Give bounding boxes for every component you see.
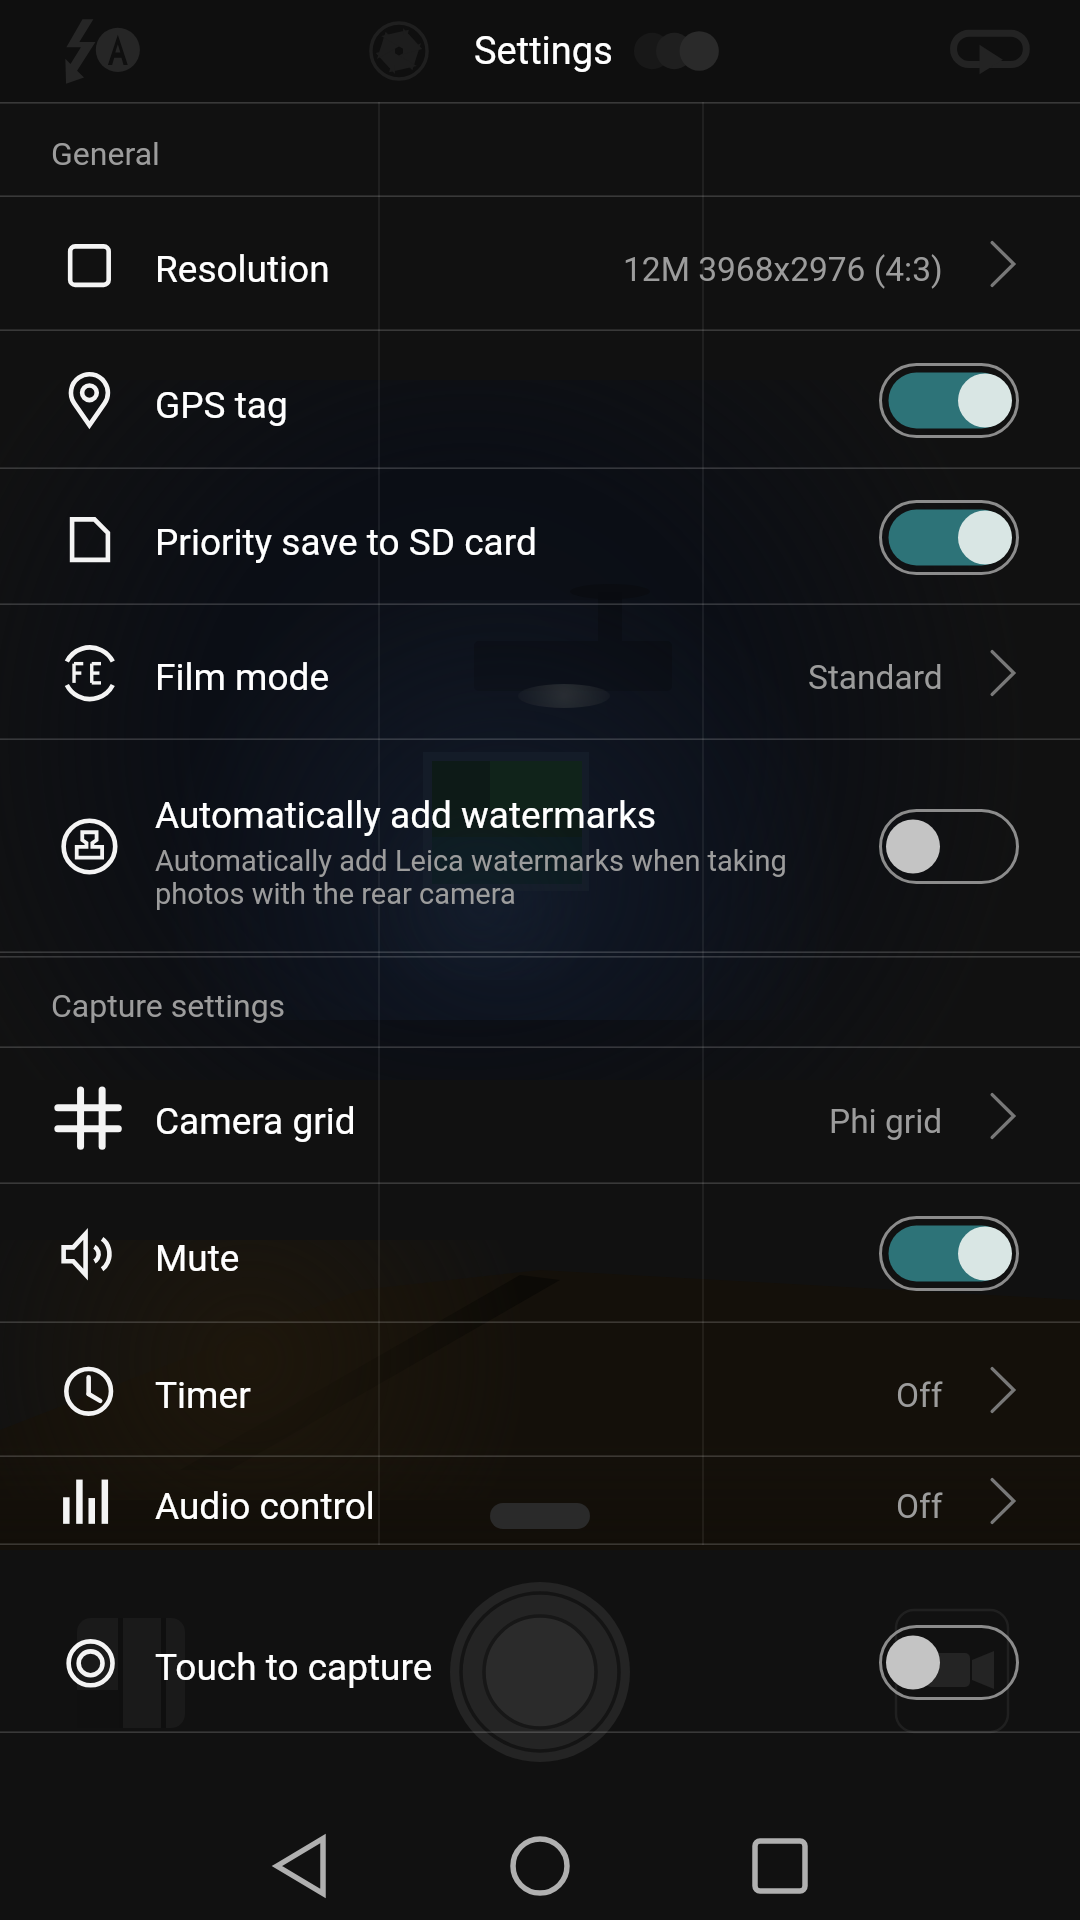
staticText: Settings	[474, 29, 613, 74]
staticText: Resolution	[155, 248, 330, 291]
staticText: Audio control	[155, 1485, 375, 1528]
staticText: General	[51, 135, 160, 173]
staticText: Timer	[155, 1374, 251, 1417]
button[interactable]: Timer	[0, 1323, 1080, 1457]
staticText: Mute	[155, 1237, 240, 1280]
button[interactable]: Automatically add watermarks off	[879, 809, 1019, 884]
button[interactable]: Priority save to SD card	[0, 469, 1080, 605]
button[interactable]: GPS tag	[0, 331, 1080, 469]
staticText: GPS tag	[155, 384, 288, 427]
button[interactable]: Back	[180, 1790, 420, 1920]
staticText: Standard	[808, 658, 943, 697]
staticText: Off	[896, 1376, 943, 1415]
button[interactable]: Shooting mode	[360, 12, 438, 90]
button[interactable]: Camera grid	[0, 1048, 1080, 1184]
button[interactable]: Recent apps	[660, 1790, 900, 1920]
button[interactable]: Priority save to SD card on	[879, 500, 1019, 575]
staticText: Camera grid	[155, 1100, 356, 1143]
button[interactable]: Resolution	[0, 197, 1080, 331]
button[interactable]: Film mode	[0, 605, 1080, 740]
staticText: Capture settings	[51, 987, 286, 1025]
staticText: Automatically add Leica watermarks when …	[155, 844, 795, 911]
staticText: Automatically add watermarks	[155, 794, 657, 837]
button[interactable]: Switch camera	[940, 0, 1044, 102]
staticText: Touch to capture	[155, 1646, 433, 1689]
button[interactable]: Touch to capture off	[879, 1625, 1019, 1700]
button[interactable]: Mute	[0, 1184, 1080, 1323]
button[interactable]: Automatically add watermarks	[0, 740, 1080, 953]
staticText: Priority save to SD card	[155, 521, 537, 564]
staticText: Phi grid	[829, 1102, 943, 1141]
button[interactable]: Filters	[632, 3, 728, 99]
button[interactable]: Touch to capture	[0, 1592, 1080, 1733]
button[interactable]: Mute on	[879, 1216, 1019, 1291]
staticText: Off	[896, 1487, 943, 1526]
button[interactable]: Audio control	[0, 1457, 1080, 1545]
button[interactable]: Home	[420, 1790, 660, 1920]
staticText: 12M 3968x2976 (4:3)	[623, 250, 943, 289]
button[interactable]: Flash auto	[44, 0, 148, 102]
button[interactable]: GPS tag on	[879, 363, 1019, 438]
staticText: Film mode	[155, 656, 330, 699]
